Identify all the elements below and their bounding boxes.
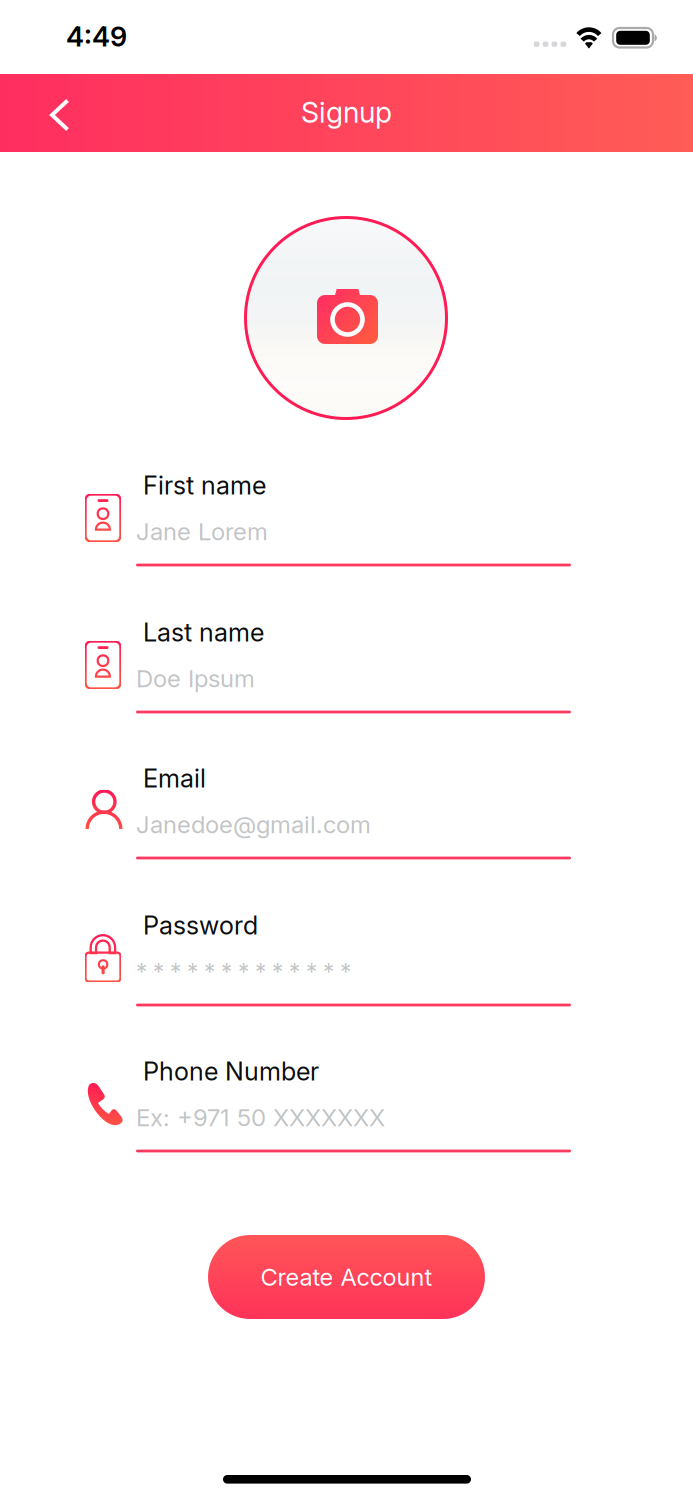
staticText: Create Account — [260, 1263, 432, 1291]
button[interactable]: Back — [0, 74, 112, 152]
staticText: * * * * * * * * * * * * * — [136, 958, 351, 985]
staticText: Doe Ipsum — [136, 664, 255, 693]
staticText: Last name — [143, 617, 264, 648]
button[interactable]: Create Account — [208, 1235, 485, 1319]
staticText: Janedoe@gmail.com — [136, 810, 371, 839]
staticText: Phone Number — [143, 1056, 319, 1087]
staticText: Email — [143, 763, 206, 794]
staticText: 4:49 — [66, 20, 127, 53]
staticText: First name — [143, 470, 266, 501]
staticText: Jane Lorem — [136, 517, 268, 546]
staticText: Signup — [301, 95, 392, 130]
staticText: Password — [143, 910, 258, 941]
staticText: Ex: +971 50 XXXXXXX — [136, 1103, 385, 1132]
button[interactable]: Add profile photo — [245, 217, 446, 418]
